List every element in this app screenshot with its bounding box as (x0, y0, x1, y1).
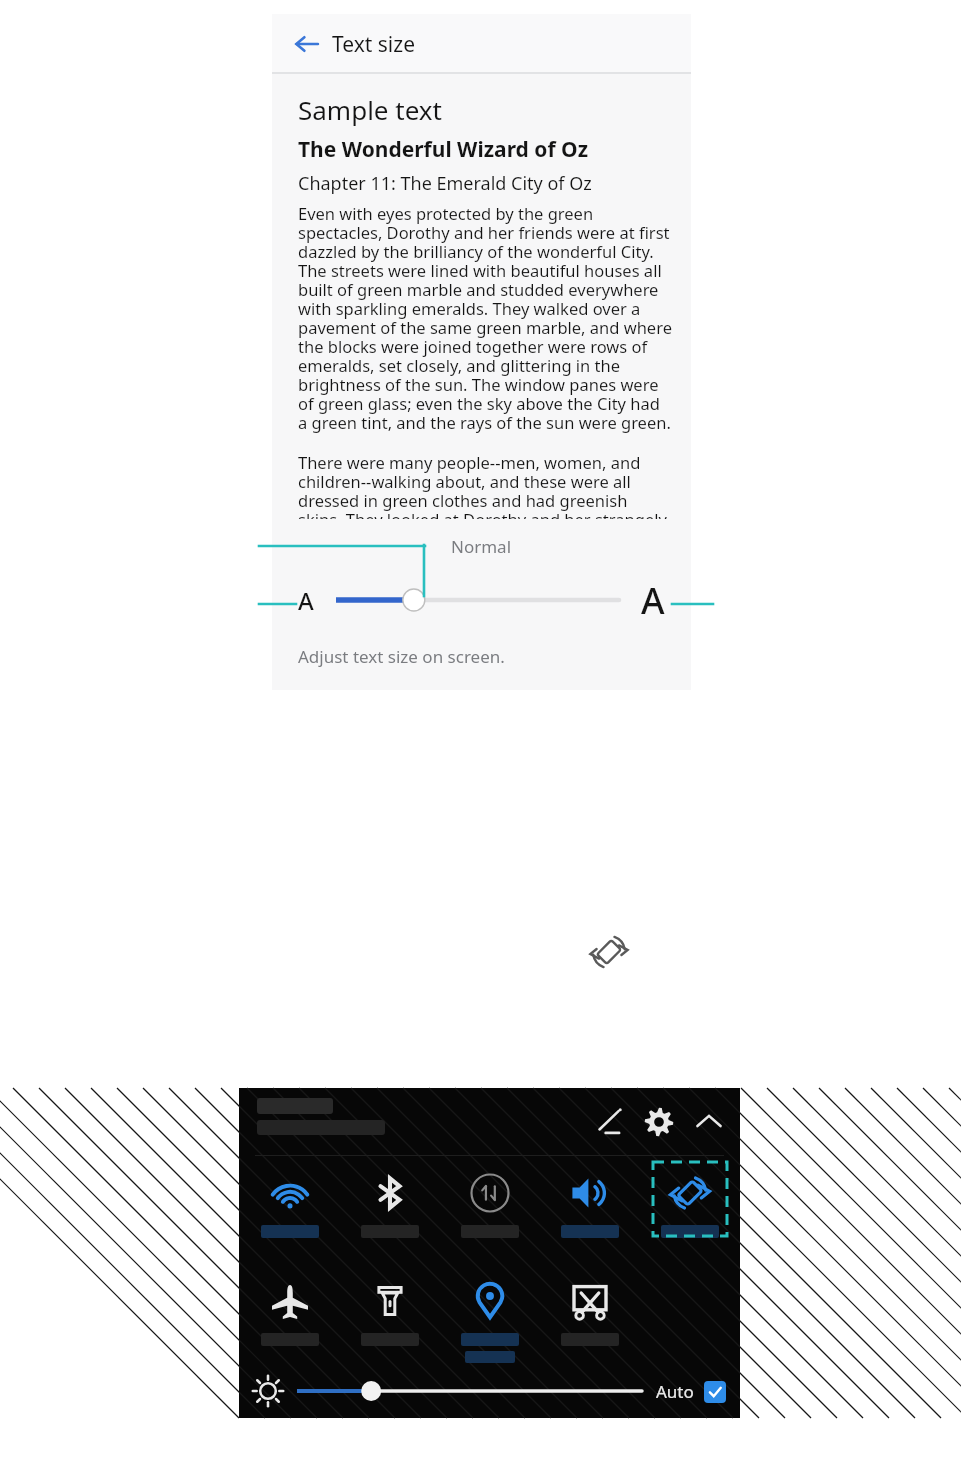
button[interactable]: Auto (656, 1380, 726, 1403)
button[interactable]: Text size slider (336, 580, 619, 620)
button[interactable]: Bluetooth (340, 1156, 440, 1264)
button[interactable]: Collapse (692, 1105, 726, 1139)
staticText: The Wonderful Wizard of Oz (298, 135, 589, 164)
staticText: Auto (656, 1380, 694, 1403)
other: Auto-rotate screen (589, 932, 629, 972)
staticText: Text size (332, 30, 415, 59)
button[interactable]: Back (286, 23, 328, 65)
staticText: Even with eyes protected by the green sp… (298, 202, 673, 434)
button[interactable]: Mobile data (440, 1156, 540, 1264)
staticText: There were many people--men, women, and … (298, 451, 673, 519)
button[interactable]: Settings (642, 1105, 676, 1139)
staticText: Normal (451, 535, 512, 558)
staticText: Chapter 11: The Emerald City of Oz (298, 171, 592, 196)
staticText: Sample text (298, 92, 442, 127)
staticText: Adjust text size on screen. (298, 645, 505, 668)
staticText: A (641, 576, 665, 625)
button[interactable]: Wi-Fi (239, 1156, 340, 1264)
button[interactable]: Edit (592, 1105, 626, 1139)
other: Brightness (253, 1376, 283, 1406)
button[interactable]: Sound (540, 1156, 640, 1264)
button[interactable]: Screenshot (540, 1264, 640, 1364)
button[interactable]: Auto-rotate (640, 1156, 740, 1264)
button[interactable]: Location (440, 1264, 540, 1364)
button[interactable]: Brightness slider (297, 1374, 642, 1408)
button[interactable]: Flashlight (340, 1264, 440, 1364)
button[interactable]: Airplane mode (239, 1264, 340, 1364)
staticText: A (298, 584, 314, 617)
